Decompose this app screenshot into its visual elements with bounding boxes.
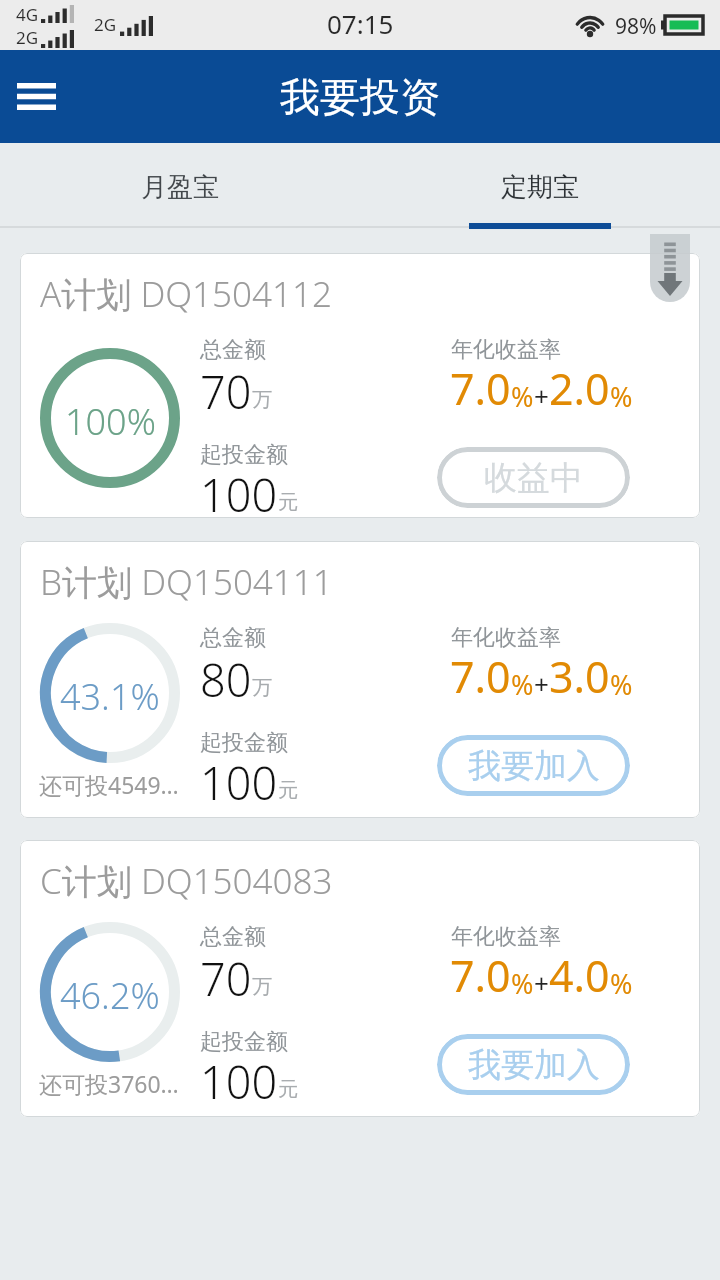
staticText: 80 [200,649,252,710]
staticText: 2.0 [549,359,610,418]
staticText: 万 [252,387,272,412]
button[interactable]: B计划 DQ1504111 [20,541,700,818]
staticText: 年化收益率 [451,923,561,951]
staticText: 月盈宝 [141,171,219,204]
staticText: 我要加入 [468,745,600,787]
staticText: % [511,378,534,415]
button[interactable]: 收益中 [437,447,630,508]
staticText: 7.0 [450,647,511,706]
staticText: 46.2% [60,971,160,1020]
button[interactable]: 月盈宝 [0,143,360,228]
staticText: 起投金额 [200,1028,288,1056]
staticText: 100 [200,752,278,813]
staticText: 元 [278,490,298,515]
staticText: 还可投4549… [39,769,179,800]
staticText: 100% [65,397,156,446]
staticText: 起投金额 [200,729,288,757]
staticText: 100 [200,464,278,518]
staticText: 2G [16,26,39,49]
staticText: 总金额 [200,624,266,652]
staticText: 70 [200,361,252,422]
button[interactable]: 我要加入 [437,1034,630,1095]
button[interactable]: Open navigation menu [2,50,70,143]
staticText: 07:15 [327,6,394,41]
staticText: 我要加入 [468,1044,600,1086]
staticText: 还可投3760… [39,1068,179,1099]
staticText: 收益中 [484,457,583,499]
staticText: % [511,965,534,1002]
staticText: % [610,378,633,415]
staticText: 4G [16,3,39,26]
button[interactable]: 定期宝 [360,143,720,228]
staticText: 2G [94,13,117,36]
staticText: + [534,666,549,701]
staticText: 4.0 [549,946,610,1005]
staticText: % [511,666,534,703]
button[interactable]: Scroll down [650,234,690,302]
staticText: % [610,666,633,703]
staticText: + [534,378,549,413]
staticText: 我要投资 [280,72,440,122]
button[interactable]: C计划 DQ1504083 [20,840,700,1117]
staticText: 起投金额 [200,441,288,469]
staticText: 总金额 [200,923,266,951]
staticText: + [534,965,549,1000]
staticText: 3.0 [549,647,610,706]
staticText: 元 [278,778,298,803]
staticText: 7.0 [450,946,511,1005]
staticText: 万 [252,974,272,999]
staticText: C计划 DQ1504083 [40,857,333,905]
button[interactable]: 我要加入 [437,735,630,796]
staticText: A计划 DQ1504112 [40,270,333,318]
staticText: 定期宝 [501,171,579,204]
staticText: 总金额 [200,336,266,364]
staticText: 万 [252,675,272,700]
staticText: % [610,965,633,1002]
button[interactable]: A计划 DQ1504112 [20,253,700,518]
staticText: 年化收益率 [451,336,561,364]
staticText: 70 [200,948,252,1009]
staticText: 7.0 [450,359,511,418]
staticText: 98% [615,12,657,41]
staticText: B计划 DQ1504111 [40,558,333,606]
staticText: 年化收益率 [451,624,561,652]
staticText: 100 [200,1051,278,1112]
staticText: 元 [278,1077,298,1102]
staticText: 43.1% [60,672,160,721]
